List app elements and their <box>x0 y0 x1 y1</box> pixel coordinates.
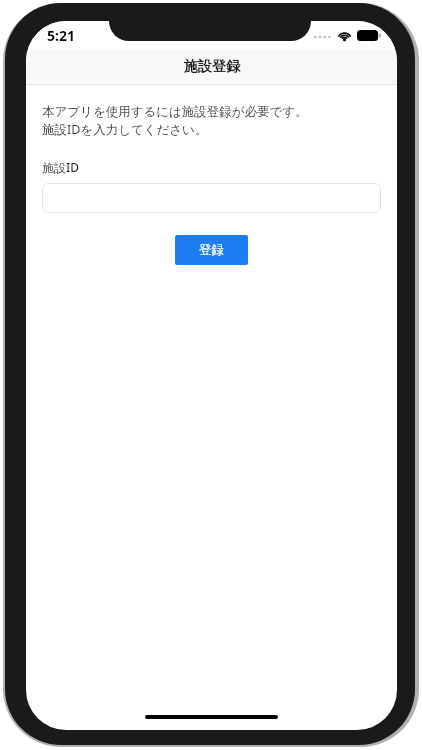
staticText: 登録 <box>199 242 224 258</box>
staticText: 本アプリを使用するには施設登録が必要です。 <box>42 104 308 120</box>
other: Home indicator <box>145 715 278 719</box>
staticText: 5:21 <box>47 26 75 45</box>
staticText: 施設ID <box>42 159 80 175</box>
button[interactable]: 登録 <box>175 235 248 265</box>
button[interactable] <box>42 183 381 213</box>
staticText: 施設IDを入力してください。 <box>42 121 208 138</box>
staticText: 施設登録 <box>184 58 240 76</box>
